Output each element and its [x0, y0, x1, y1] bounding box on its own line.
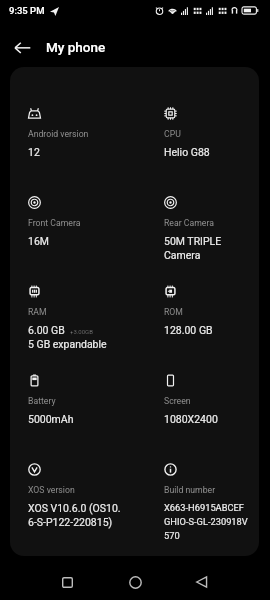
staticText: 16M: [28, 235, 49, 247]
staticText: Android version: [28, 129, 89, 139]
staticText: CPU: [164, 129, 181, 139]
staticText: 9:35 PM: [9, 5, 45, 16]
staticText: Front Camera: [28, 218, 81, 228]
staticText: My phone: [46, 39, 106, 55]
staticText: 12: [28, 146, 40, 158]
button[interactable]: Back: [6, 31, 38, 63]
button[interactable]: Recent apps: [49, 564, 85, 600]
staticText: RAM: [28, 307, 47, 317]
staticText: Camera: [164, 249, 201, 261]
staticText: +3.00GB: [70, 328, 93, 335]
staticText: GHIO-S-GL-230918V: [164, 516, 248, 527]
staticText: Battery: [28, 396, 56, 406]
staticText: Rear Camera: [164, 218, 214, 228]
staticText: 5 GB expandable: [28, 338, 107, 350]
staticText: 570: [164, 530, 180, 541]
staticText: X663-H6915ABCEF: [164, 502, 244, 513]
staticText: XOS V10.6.0 (OS10.: [28, 502, 121, 514]
staticText: 5000mAh: [28, 413, 74, 425]
staticText: 6-S-P122-220815): [28, 516, 113, 528]
staticText: ROM: [164, 307, 183, 317]
button[interactable]: Back: [184, 564, 220, 600]
staticText: 128.00 GB: [164, 324, 213, 336]
staticText: 50M TRIPLE: [164, 235, 222, 247]
staticText: 1080X2400: [164, 413, 218, 425]
button[interactable]: Home: [117, 564, 153, 600]
staticText: Build number: [164, 485, 216, 495]
staticText: 6.00 GB: [28, 324, 65, 336]
staticText: XOS version: [28, 485, 75, 495]
staticText: Screen: [164, 396, 191, 406]
staticText: Helio G88: [164, 146, 210, 158]
